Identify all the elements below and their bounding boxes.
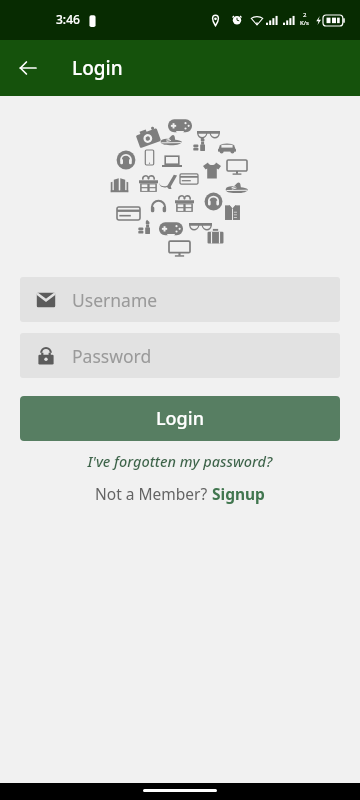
staticText: 3:46 bbox=[56, 11, 80, 27]
button[interactable]: Login bbox=[20, 396, 340, 441]
staticText: Not a Member? bbox=[95, 483, 212, 504]
staticText: Username bbox=[72, 288, 158, 312]
staticText: Login bbox=[72, 55, 123, 81]
button[interactable]: Password bbox=[20, 333, 340, 378]
staticText: Login bbox=[156, 406, 204, 431]
button[interactable]: Signup bbox=[212, 483, 265, 504]
staticText: K/s bbox=[300, 19, 309, 27]
button[interactable]: I've forgotten my password? bbox=[0, 451, 360, 471]
staticText: 2 bbox=[303, 11, 307, 19]
button[interactable]: Username bbox=[20, 277, 340, 322]
button[interactable]: Back bbox=[6, 46, 50, 90]
staticText: Password bbox=[72, 344, 152, 368]
